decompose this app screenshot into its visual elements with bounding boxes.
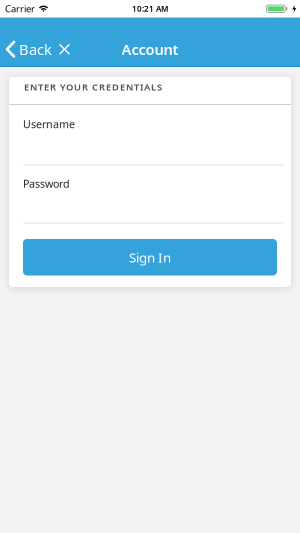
button[interactable]: Sign In bbox=[23, 239, 277, 275]
staticText: Password bbox=[23, 176, 70, 191]
staticText: Account bbox=[121, 39, 178, 59]
button[interactable]: Close bbox=[52, 41, 69, 58]
staticText: ENTER YOUR CREDENTIALS bbox=[24, 81, 162, 93]
button[interactable]: Username bbox=[9, 105, 291, 165]
staticText: Sign In bbox=[129, 248, 171, 266]
button[interactable]: Password bbox=[9, 165, 291, 223]
staticText: Carrier bbox=[5, 3, 35, 15]
staticText: 10:21 AM bbox=[132, 3, 168, 14]
button[interactable]: Back bbox=[0, 39, 52, 59]
staticText: Back bbox=[19, 39, 52, 59]
staticText: Username bbox=[23, 117, 75, 131]
